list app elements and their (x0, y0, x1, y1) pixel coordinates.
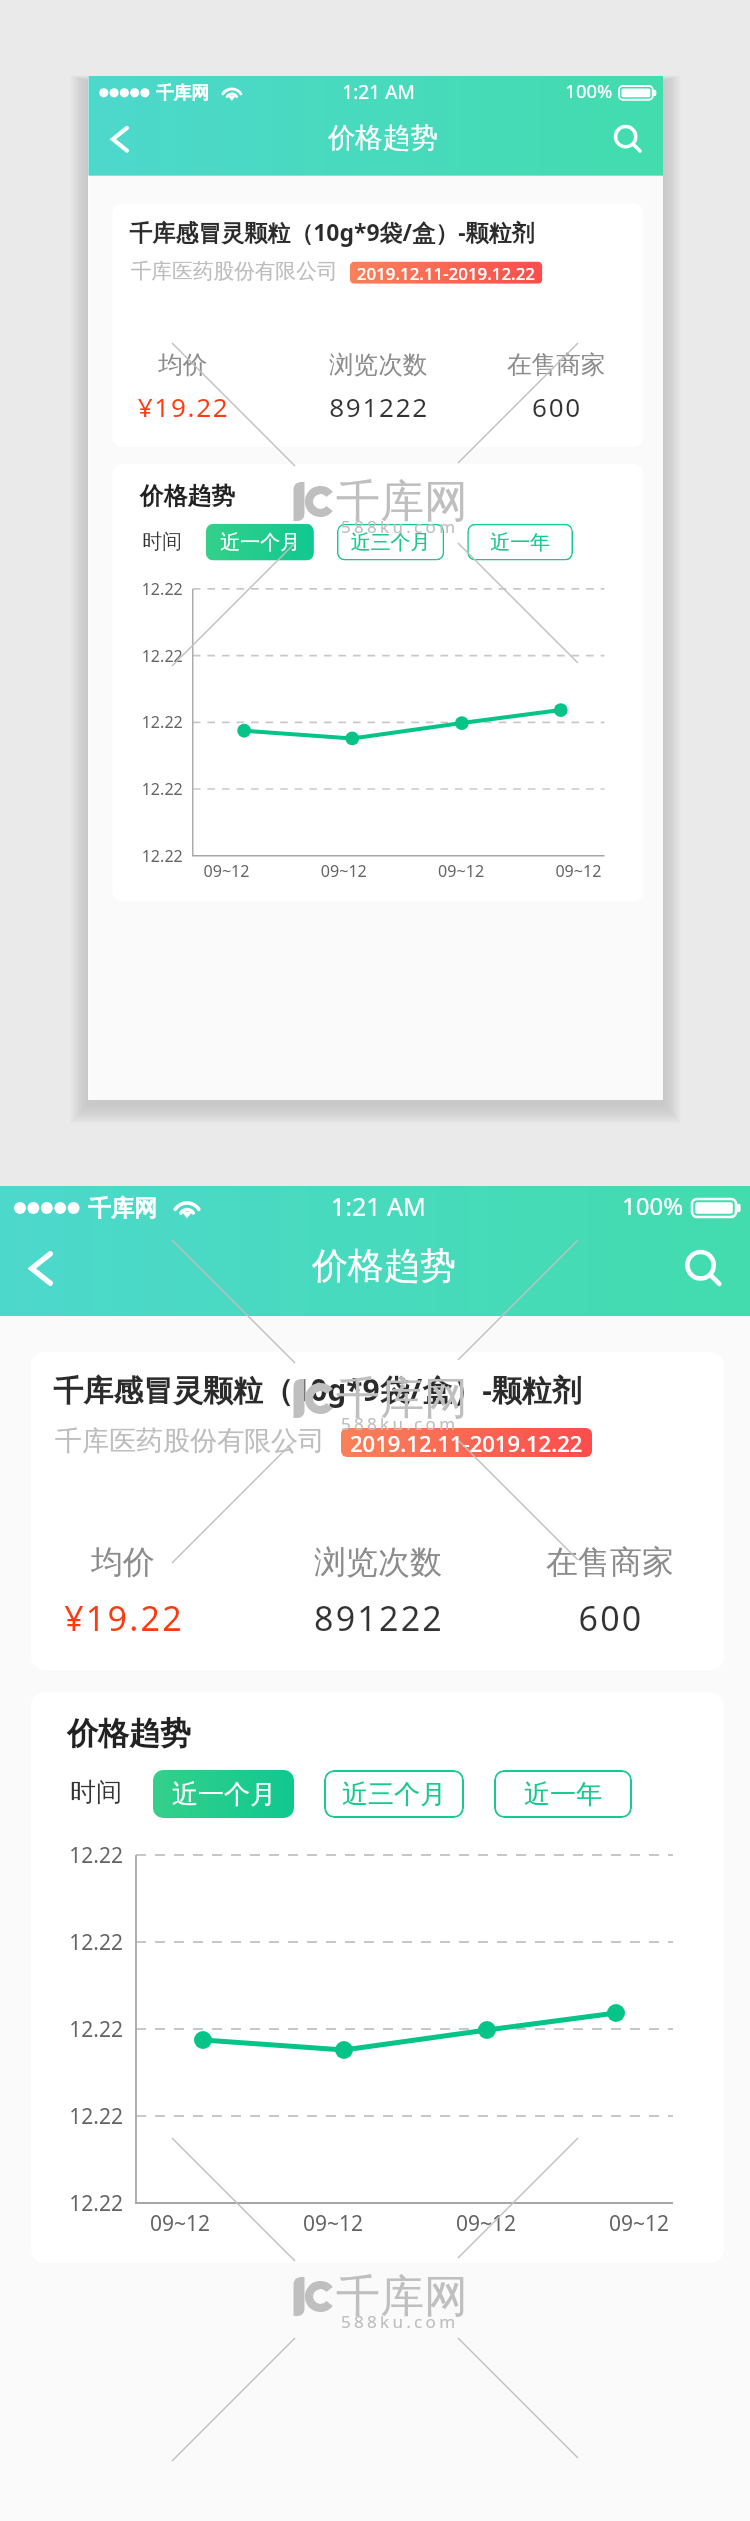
staticText: ¥19.22 (34, 1595, 214, 1641)
staticText: 近一个月 (220, 530, 300, 555)
staticText: 在售商家 (487, 349, 625, 380)
staticText: 在售商家 (520, 1542, 700, 1582)
staticText: 12.22 (57, 1841, 123, 1870)
button[interactable]: 千库感冒灵颗粒（10g*9袋/盒）-颗粒剂 (31, 1352, 724, 1670)
button[interactable]: 近一个月 (153, 1770, 294, 1818)
staticText: 千库网 (88, 1194, 157, 1223)
staticText: 588ku.com (341, 1412, 459, 1435)
staticText: 588ku.com (341, 515, 459, 538)
staticText: 12.22 (132, 578, 183, 600)
button[interactable]: 千库感冒灵颗粒（10g*9袋/盒）-颗粒剂 (112, 203, 644, 447)
staticText: 千库网 (336, 2269, 468, 2324)
staticText: 12.22 (57, 2102, 123, 2131)
staticText: 09~12 (548, 860, 609, 882)
staticText: 千库感冒灵颗粒（10g*9袋/盒）-颗粒剂 (53, 1369, 582, 1410)
staticText: 600 (521, 1595, 701, 1641)
staticText: 千库医药股份有限公司 (131, 258, 338, 285)
staticText: 近三个月 (351, 530, 430, 555)
staticText: 均价 (114, 349, 252, 380)
staticText: 近一个月 (172, 1778, 276, 1811)
staticText: 价格趋势 (140, 481, 235, 511)
staticText: 千库网 (156, 82, 209, 104)
staticText: 千库网 (336, 1371, 468, 1426)
staticText: 价格趋势 (67, 1714, 191, 1753)
staticText: 千库感冒灵颗粒（10g*9袋/盒）-颗粒剂 (129, 216, 535, 248)
staticText: ¥19.22 (115, 390, 253, 425)
staticText: 1:21 AM (331, 1189, 426, 1223)
button[interactable]: 近一年 (467, 524, 573, 560)
staticText: 12.22 (132, 712, 183, 734)
staticText: 891222 (310, 390, 448, 425)
staticText: 近一年 (490, 530, 550, 555)
staticText: 09~12 (196, 860, 257, 882)
staticText: 12.22 (57, 2189, 123, 2218)
staticText: 近三个月 (342, 1778, 446, 1811)
button[interactable]: Search (601, 112, 654, 166)
staticText: 09~12 (430, 860, 492, 882)
staticText: 09~12 (599, 2209, 679, 2238)
staticText: 12.22 (132, 778, 183, 800)
button[interactable]: Search (668, 1233, 738, 1303)
staticText: 2019.12.11-2019.12.22 (357, 261, 535, 284)
staticText: 09~12 (293, 2209, 373, 2238)
staticText: 浏览次数 (309, 349, 447, 380)
staticText: 千库网 (336, 474, 468, 529)
staticText: 2019.12.11-2019.12.22 (350, 1428, 583, 1457)
button[interactable]: Back (6, 1233, 76, 1303)
staticText: 12.22 (57, 1928, 123, 1957)
staticText: 09~12 (313, 860, 374, 882)
staticText: 100% (565, 78, 613, 104)
staticText: 588ku.com (341, 2310, 459, 2333)
button[interactable]: 近三个月 (337, 524, 444, 560)
staticText: 09~12 (140, 2209, 220, 2238)
staticText: 千库医药股份有限公司 (55, 1424, 325, 1458)
button[interactable]: 近一年 (494, 1770, 632, 1818)
button[interactable]: Back (93, 112, 147, 166)
staticText: 浏览次数 (288, 1542, 468, 1582)
button[interactable]: 近三个月 (324, 1770, 464, 1818)
staticText: 时间 (142, 528, 182, 554)
staticText: 100% (622, 1189, 684, 1222)
staticText: 近一年 (524, 1778, 602, 1811)
staticText: 12.22 (57, 2015, 123, 2044)
staticText: 价格趋势 (328, 120, 438, 154)
staticText: 12.22 (132, 645, 183, 667)
staticText: 891222 (289, 1595, 469, 1641)
staticText: 价格趋势 (312, 1243, 456, 1288)
staticText: 时间 (70, 1776, 122, 1809)
button[interactable]: 近一个月 (206, 524, 314, 560)
staticText: 1:21 AM (342, 78, 415, 104)
staticText: 均价 (33, 1542, 213, 1582)
staticText: 09~12 (446, 2209, 526, 2238)
staticText: 600 (488, 390, 626, 425)
staticText: 12.22 (132, 845, 183, 867)
